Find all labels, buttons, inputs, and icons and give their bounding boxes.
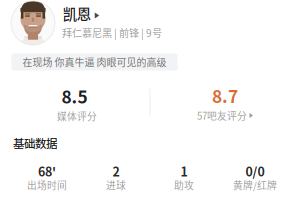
staticText: 0/0 <box>245 162 264 180</box>
staticText: 出场时间 <box>27 178 67 192</box>
staticText: 1 <box>180 162 187 180</box>
staticText: 在现场 你真牛逼 肉眼可见的高级 <box>22 55 166 69</box>
button[interactable]: 在现场 你真牛逼 肉眼可见的高级 <box>11 53 177 70</box>
staticText: 媒体评分 <box>57 109 97 123</box>
staticText: 8.7 <box>212 83 238 108</box>
staticText: 基础数据 <box>13 135 57 151</box>
staticText: 黄牌/红牌 <box>233 178 277 192</box>
button[interactable]: 凯恩 <box>11 0 191 46</box>
button[interactable]: 8.7 <box>170 82 280 126</box>
staticText: 57吧友评分 <box>197 108 247 123</box>
staticText: 8.5 <box>61 83 87 109</box>
staticText: 凯恩 <box>63 3 91 24</box>
staticText: 助攻 <box>174 178 194 192</box>
staticText: 进球 <box>106 178 126 192</box>
staticText: 68' <box>38 162 56 180</box>
staticText: 2 <box>112 162 119 180</box>
staticText: 拜仁慕尼黑 | 前锋 | 9号 <box>62 25 162 40</box>
